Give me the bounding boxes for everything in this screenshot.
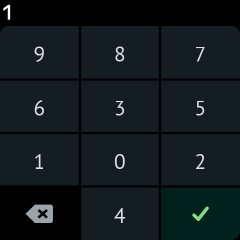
button[interactable]: Delete bbox=[0, 186, 80, 240]
button[interactable]: 8 bbox=[80, 26, 160, 79]
staticText: 1 bbox=[33, 147, 45, 175]
staticText: 2 bbox=[195, 147, 207, 175]
button[interactable]: 6 bbox=[0, 79, 80, 133]
staticText: 3 bbox=[114, 94, 126, 121]
button[interactable]: 4 bbox=[80, 186, 160, 240]
button[interactable]: 3 bbox=[80, 79, 160, 133]
button[interactable]: 2 bbox=[160, 133, 240, 186]
button[interactable]: Confirm bbox=[160, 186, 240, 240]
staticText: 0 bbox=[114, 147, 126, 175]
staticText: 6 bbox=[33, 94, 45, 121]
staticText: 9 bbox=[33, 40, 45, 67]
staticText: 4 bbox=[114, 201, 126, 229]
button[interactable]: 5 bbox=[160, 79, 240, 133]
staticText: 7 bbox=[195, 40, 207, 67]
button[interactable]: 1 bbox=[0, 133, 80, 186]
staticText: 8 bbox=[114, 40, 126, 67]
button[interactable]: 9 bbox=[0, 26, 80, 79]
button[interactable]: 7 bbox=[160, 26, 240, 79]
staticText: 5 bbox=[195, 94, 207, 121]
button[interactable]: 0 bbox=[80, 133, 160, 186]
